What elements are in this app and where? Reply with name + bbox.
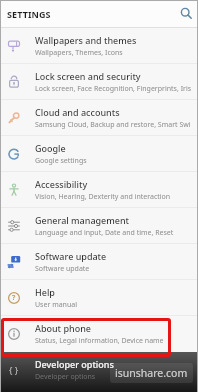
- button[interactable]: Cloud and accounts: [0, 100, 198, 136]
- button[interactable]: Software update: [0, 244, 198, 280]
- button[interactable]: General management: [0, 208, 198, 244]
- staticText: Wallpapers, Themes, Icons: [35, 48, 123, 58]
- button[interactable]: SETTINGS: [0, 0, 198, 28]
- button[interactable]: Wallpapers and themes: [0, 28, 198, 64]
- button[interactable]: About phone: [0, 316, 198, 352]
- button[interactable]: ?: [0, 280, 198, 316]
- staticText: Developer options: [35, 372, 96, 382]
- staticText: Google: [35, 142, 66, 154]
- staticText: Accessibility: [35, 178, 88, 190]
- staticText: About phone: [35, 322, 91, 334]
- staticText: Language and input, Date and time, Reset: [35, 228, 174, 238]
- staticText: Google settings: [35, 156, 87, 166]
- staticText: Developer options: [35, 358, 114, 370]
- staticText: ?: [12, 293, 16, 303]
- button[interactable]: { }: [0, 352, 198, 388]
- staticText: SETTINGS: [7, 8, 51, 20]
- staticText: isunshare.com: [115, 366, 188, 380]
- staticText: Status, Legal information, Device name: [35, 336, 164, 346]
- staticText: Vision, Hearing, Dexterity and interacti…: [35, 192, 171, 202]
- staticText: General management: [35, 214, 130, 226]
- staticText: Cloud and accounts: [35, 106, 120, 118]
- button[interactable]: Google: [0, 136, 198, 172]
- staticText: Lock screen, Face Recognition, Fingerpri…: [35, 84, 192, 94]
- staticText: Software update: [35, 264, 90, 274]
- staticText: Samsung Cloud, Backup and restore, Smart…: [35, 120, 191, 130]
- staticText: Software update: [35, 250, 107, 262]
- staticText: User manual: [35, 300, 77, 310]
- button[interactable]: Accessibility: [0, 172, 198, 208]
- staticText: Lock screen and security: [35, 70, 141, 82]
- staticText: Wallpapers and themes: [35, 34, 137, 46]
- button[interactable]: Lock screen and security: [0, 64, 198, 100]
- staticText: Help: [35, 286, 55, 298]
- staticText: { }: [9, 364, 19, 376]
